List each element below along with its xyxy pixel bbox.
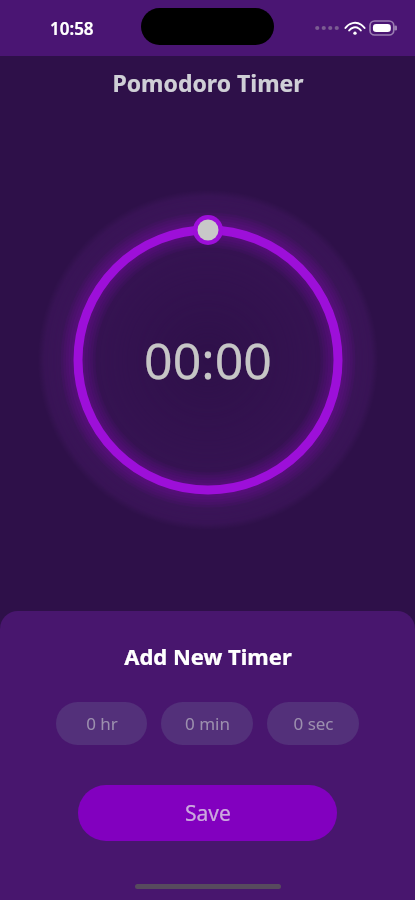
button[interactable]: 0 hr bbox=[56, 702, 147, 745]
button[interactable]: 0 sec bbox=[267, 702, 359, 745]
staticText: 0 sec bbox=[293, 712, 334, 735]
button[interactable]: 0 min bbox=[161, 702, 253, 745]
staticText: 0 min bbox=[185, 712, 230, 735]
button[interactable]: Timer dial bbox=[36, 188, 380, 532]
staticText: Pomodoro Timer bbox=[112, 67, 304, 98]
button[interactable]: Save bbox=[78, 785, 337, 841]
staticText: Save bbox=[185, 799, 231, 828]
staticText: Add New Timer bbox=[124, 641, 292, 671]
staticText: 00:00 bbox=[144, 326, 272, 394]
staticText: 10:58 bbox=[50, 17, 94, 40]
staticText: 0 hr bbox=[86, 712, 118, 735]
